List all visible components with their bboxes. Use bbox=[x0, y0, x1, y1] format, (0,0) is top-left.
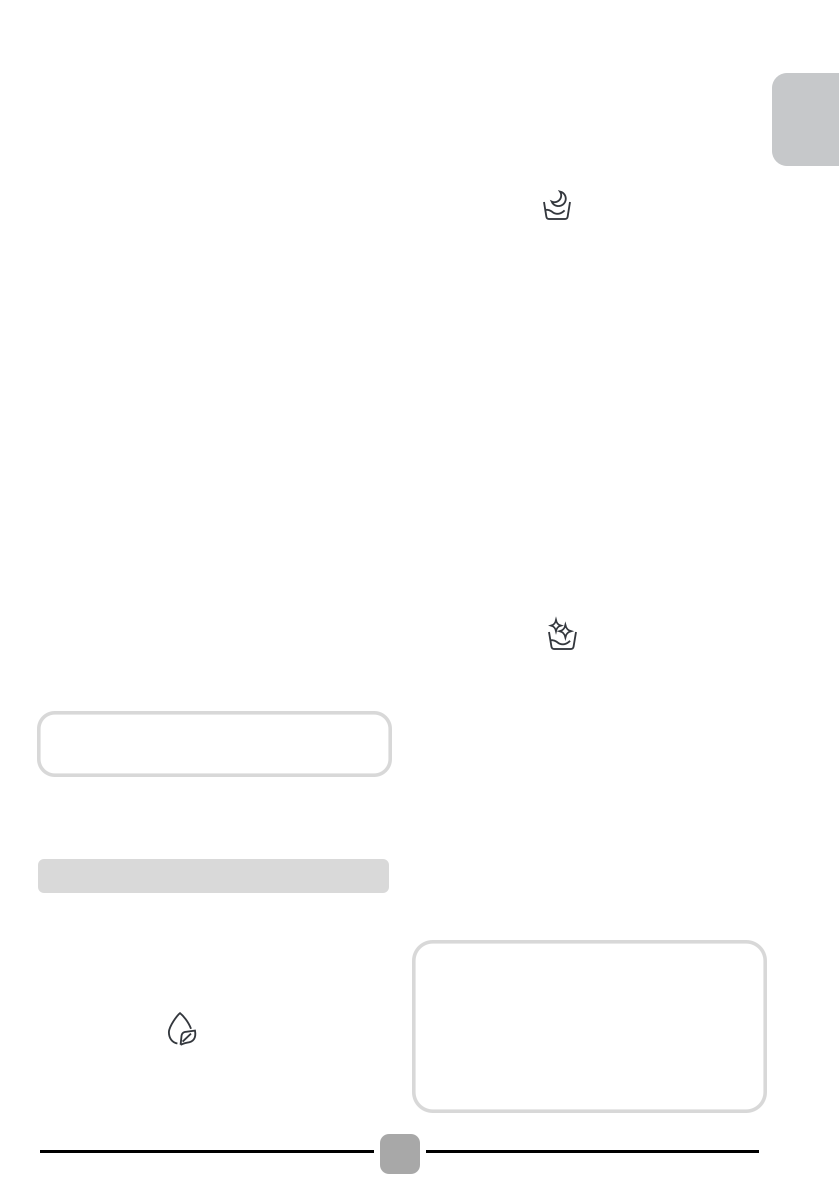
button[interactable]: Field bbox=[37, 711, 392, 777]
button[interactable]: Card bbox=[412, 940, 767, 1113]
button[interactable]: Panel bbox=[772, 73, 839, 166]
